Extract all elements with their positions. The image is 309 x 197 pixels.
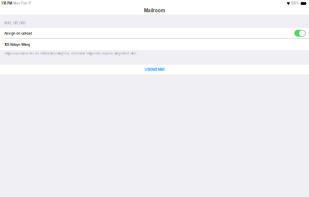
staticText: 102 Robyn Wang	[4, 42, 30, 47]
staticText: 100%	[291, 2, 299, 5]
staticText: MAIL UPLOAD	[4, 21, 25, 25]
staticText: Mailroom	[144, 8, 165, 13]
button[interactable]: 102 Robyn Wang	[0, 39, 309, 50]
staticText: Assign on upload	[4, 31, 32, 35]
staticText: Mon Feb 17	[12, 2, 31, 5]
staticText: 1:18 PM	[1, 2, 12, 5]
staticText: Upload Mail	[144, 67, 164, 72]
button[interactable]: Upload Mail	[0, 65, 309, 74]
button[interactable]: Assign on upload	[0, 28, 309, 38]
staticText: Images uploaded will be immediately assi…	[4, 52, 137, 55]
